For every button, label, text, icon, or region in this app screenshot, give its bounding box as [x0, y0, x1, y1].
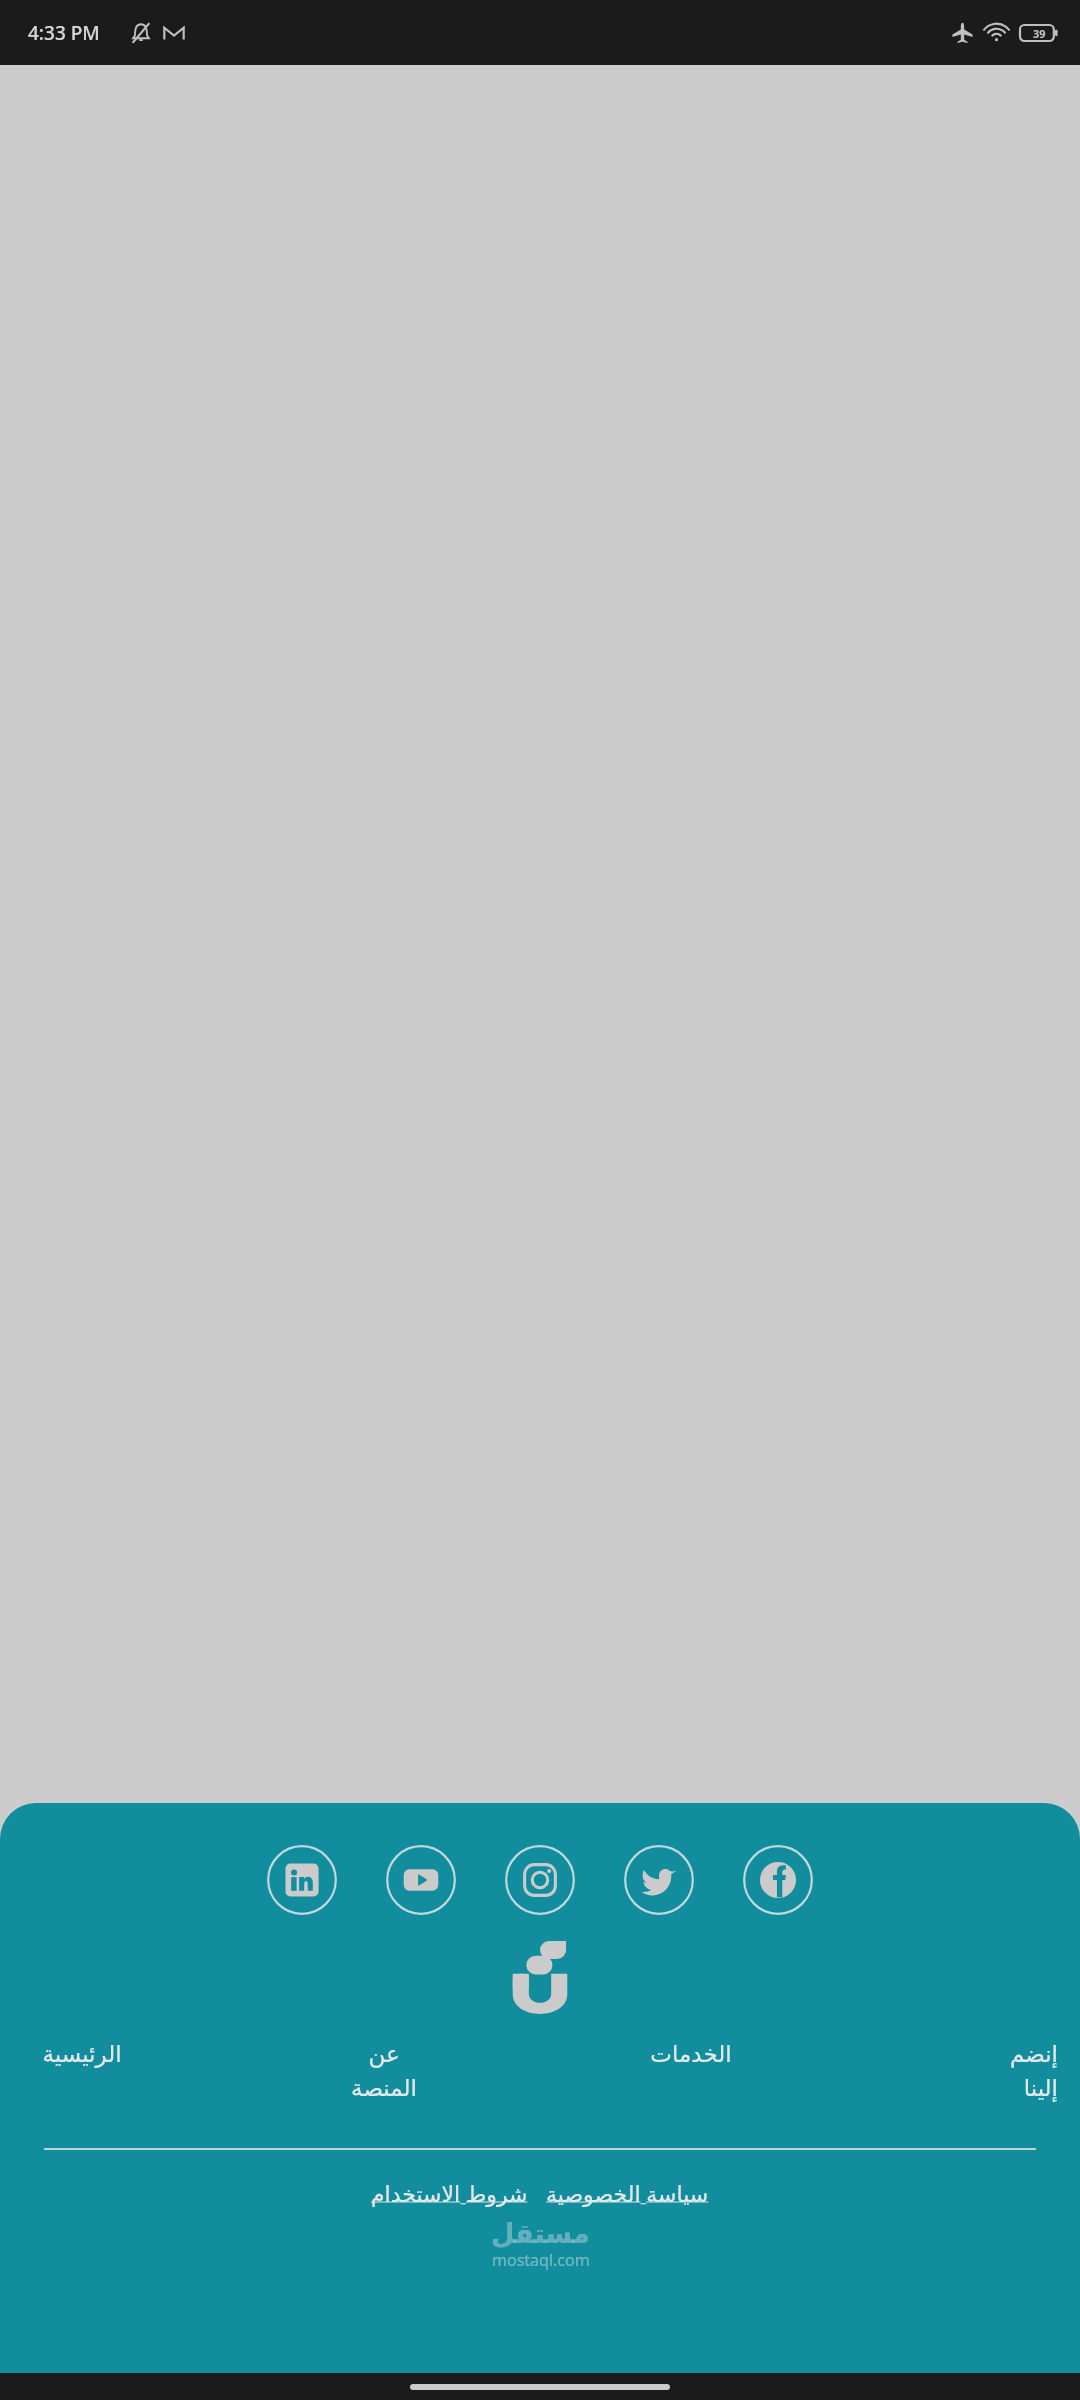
button[interactable]: إنضم إلينا [938, 2041, 1058, 2102]
staticText: سياسة الخصوصية [546, 2178, 709, 2208]
staticText: عن المنصة [324, 2041, 444, 2102]
button[interactable]: YouTube [386, 1845, 456, 1915]
staticText: الخدمات [626, 2041, 756, 2068]
button[interactable]: شروط الاستخدام [371, 2178, 528, 2208]
button[interactable]: الرئيسية [22, 2041, 142, 2068]
other: Mostaql logo [509, 1941, 571, 2019]
button[interactable]: عن المنصة [324, 2041, 444, 2102]
staticText: الرئيسية [22, 2041, 142, 2068]
staticText: إنضم إلينا [938, 2041, 1058, 2102]
button[interactable]: LinkedIn [267, 1845, 337, 1915]
button[interactable]: Facebook [743, 1845, 813, 1915]
button[interactable]: سياسة الخصوصية [546, 2178, 709, 2208]
button[interactable]: الخدمات [626, 2041, 756, 2068]
staticText: مستقل [491, 2218, 590, 2249]
button[interactable]: Twitter [624, 1845, 694, 1915]
staticText: 4:33 PM [28, 20, 100, 46]
staticText: 39 [1033, 26, 1046, 41]
staticText: شروط الاستخدام [371, 2178, 528, 2208]
button[interactable]: Instagram [505, 1845, 575, 1915]
staticText: mostaql.com [492, 2249, 590, 2271]
